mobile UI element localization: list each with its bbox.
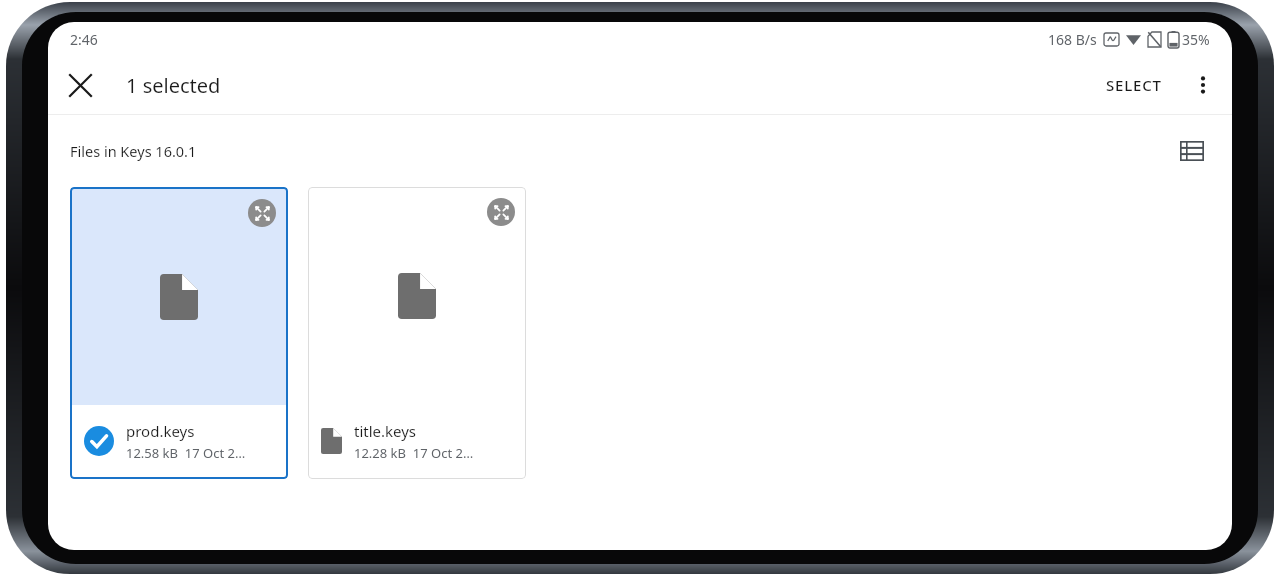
- staticText: SELECT: [1106, 75, 1162, 95]
- button[interactable]: More options: [1180, 62, 1226, 108]
- staticText: 12.58 kB 17 Oct 2…: [126, 444, 246, 462]
- staticText: prod.keys: [126, 421, 195, 441]
- button[interactable]: Expand preview: [70, 187, 288, 479]
- button[interactable]: Expand preview: [248, 199, 276, 227]
- staticText: 1 selected: [126, 72, 221, 99]
- button[interactable]: Expand preview: [487, 198, 515, 226]
- button[interactable]: SELECT: [1094, 65, 1174, 105]
- staticText: 168 B/s: [1048, 30, 1097, 49]
- staticText: 35%: [1182, 30, 1210, 49]
- button[interactable]: Expand preview: [308, 187, 526, 479]
- button[interactable]: Close: [56, 61, 104, 109]
- staticText: title.keys: [354, 421, 417, 441]
- staticText: 12.28 kB 17 Oct 2…: [354, 444, 474, 462]
- staticText: 2:46: [70, 30, 98, 49]
- staticText: Files in Keys 16.0.1: [70, 141, 197, 161]
- button[interactable]: List view: [1170, 129, 1214, 173]
